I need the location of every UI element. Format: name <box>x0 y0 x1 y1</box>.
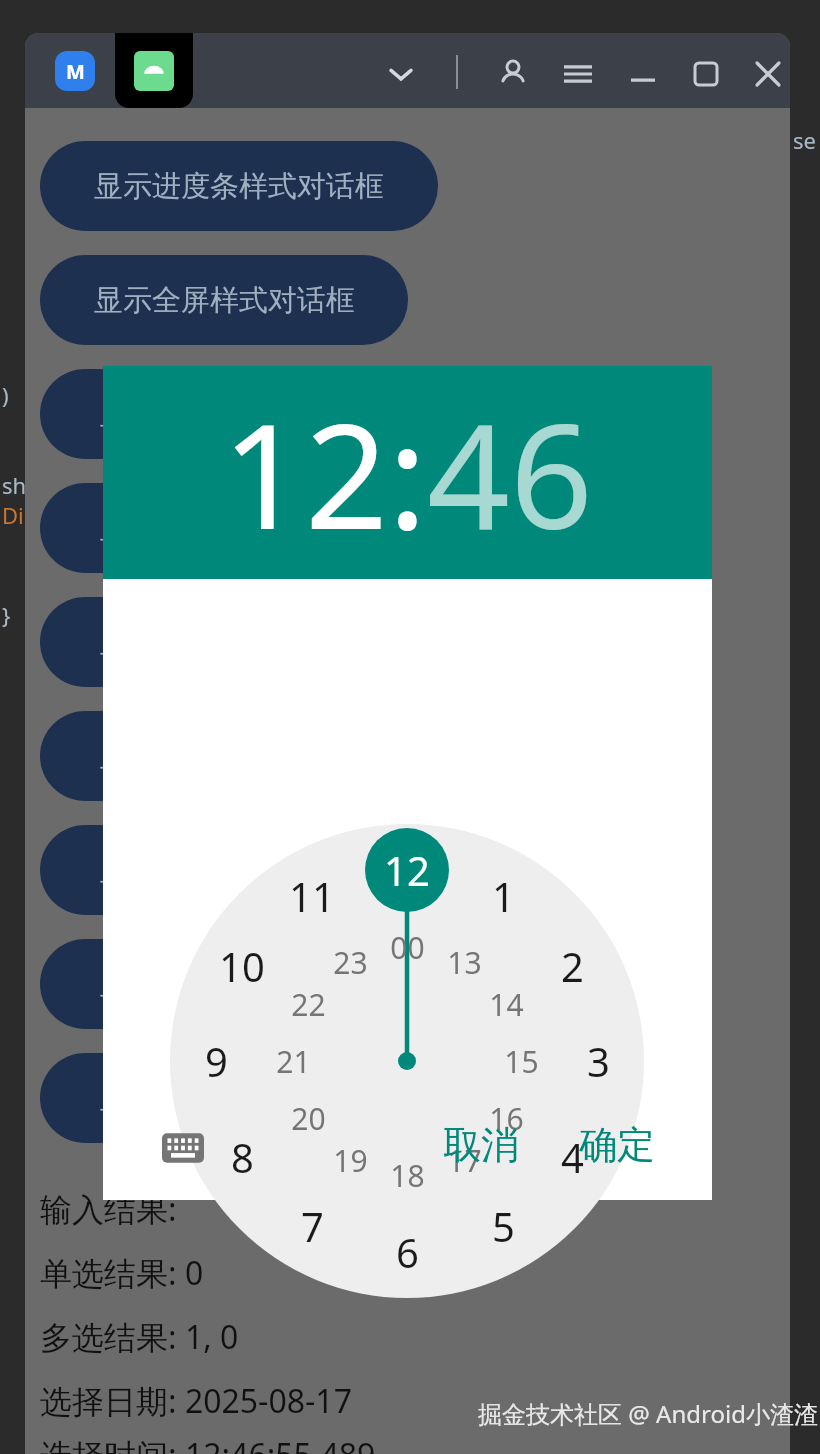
button[interactable]: 18 <box>371 1151 443 1199</box>
button[interactable]: 2 <box>532 938 612 994</box>
staticText: } <box>2 600 11 630</box>
staticText: 6 <box>396 1225 419 1279</box>
button[interactable]: 23 <box>314 938 386 986</box>
staticText: 显示日期选择对话框 <box>100 1080 361 1117</box>
staticText: 显示进度条样式对话框 <box>94 168 384 205</box>
staticText: 显示日期选择对话框 <box>100 852 361 889</box>
button[interactable]: 7 <box>272 1198 352 1254</box>
button[interactable]: 确定 <box>561 1110 673 1180</box>
staticText: 7 <box>301 1199 324 1253</box>
button[interactable]: 显示日期选择对话框 <box>40 939 420 1029</box>
button[interactable]: 显示日期选择对话框 <box>40 1053 420 1143</box>
staticText: 选择日期: 2025-08-17 <box>40 1379 352 1423</box>
staticText: 5 <box>492 1199 515 1253</box>
button[interactable]: 6 <box>367 1224 447 1280</box>
staticText: 19 <box>333 1140 368 1181</box>
staticText: Di <box>2 500 24 530</box>
button[interactable]: Switch to keyboard input <box>155 1120 211 1176</box>
button[interactable]: 显示全屏样式对话框 <box>40 255 408 345</box>
button[interactable]: Maximize <box>683 51 729 97</box>
staticText: 12 <box>384 843 430 897</box>
button[interactable]: Emulator tab <box>115 33 193 108</box>
button[interactable]: 显示日期选择对话框 <box>40 369 420 459</box>
staticText: 8 <box>231 1130 254 1184</box>
staticText: 单选结果: 0 <box>40 1251 204 1295</box>
staticText: ) <box>2 380 9 410</box>
staticText: 9 <box>205 1034 228 1088</box>
staticText: 4 <box>561 1130 584 1184</box>
button[interactable]: 显示日期选择对话框 <box>40 825 420 915</box>
button[interactable]: 9 <box>176 1033 256 1089</box>
button[interactable]: 取消 <box>425 1110 537 1180</box>
button[interactable]: 21 <box>257 1037 329 1085</box>
staticText: 显示全屏样式对话框 <box>94 282 355 319</box>
staticText: se <box>793 125 816 155</box>
staticText: 00 <box>390 927 425 968</box>
staticText: 17 <box>447 1140 482 1181</box>
staticText: 3 <box>587 1034 610 1088</box>
staticText: 2 <box>561 939 584 993</box>
staticText: M <box>66 58 85 85</box>
staticText: 20 <box>291 1098 326 1139</box>
button[interactable]: 16 <box>470 1094 542 1142</box>
staticText: 22 <box>291 984 326 1025</box>
button[interactable]: 13 <box>428 938 500 986</box>
button[interactable]: 20 <box>272 1094 344 1142</box>
button[interactable]: 8 <box>202 1129 282 1185</box>
button[interactable]: Account <box>490 51 536 97</box>
staticText: : <box>388 374 427 571</box>
staticText: 16 <box>489 1098 524 1139</box>
button[interactable]: 14 <box>470 980 542 1028</box>
staticText: 15 <box>504 1041 539 1082</box>
button[interactable]: 17 <box>428 1136 500 1184</box>
staticText: 18 <box>390 1155 425 1196</box>
staticText: 23 <box>333 942 368 983</box>
staticText: 多选结果: 1, 0 <box>40 1315 239 1359</box>
button[interactable]: 1 <box>463 868 543 924</box>
staticText: 掘金技术社区 @ Android小渣渣 <box>478 1397 818 1430</box>
button[interactable]: 46 <box>427 374 593 571</box>
staticText: 显示日期选择对话框 <box>100 738 361 775</box>
button[interactable]: 4 <box>532 1129 612 1185</box>
staticText: 显示日期选择对话框 <box>100 396 361 433</box>
staticText: 1 <box>492 869 515 923</box>
staticText: 14 <box>489 984 524 1025</box>
staticText: 显示日期选择对话框 <box>100 510 361 547</box>
button[interactable]: 显示日期选择对话框 <box>40 483 420 573</box>
staticText: 选择时间: 12:46:55.489 <box>40 1433 376 1454</box>
button[interactable]: 22 <box>272 980 344 1028</box>
button[interactable]: Menu <box>555 51 601 97</box>
staticText: sh <box>2 470 27 500</box>
button[interactable]: 显示日期选择对话框 <box>40 597 420 687</box>
button[interactable]: 19 <box>314 1136 386 1184</box>
staticText: 输入结果: <box>40 1187 185 1231</box>
button[interactable]: Running devices <box>55 51 95 91</box>
button[interactable]: 5 <box>463 1198 543 1254</box>
staticText: 显示日期选择对话框 <box>100 966 361 1003</box>
button[interactable]: 15 <box>485 1037 557 1085</box>
button[interactable]: Expand <box>380 53 422 95</box>
staticText: 21 <box>276 1041 311 1082</box>
staticText: 确定 <box>579 1121 655 1169</box>
button[interactable]: Minimize <box>620 51 666 97</box>
staticText: 11 <box>289 869 335 923</box>
staticText: 显示日期选择对话框 <box>100 624 361 661</box>
button[interactable]: 10 <box>202 938 282 994</box>
button[interactable]: 12 <box>222 374 388 571</box>
button[interactable]: 11 <box>272 868 352 924</box>
staticText: 10 <box>219 939 265 993</box>
button[interactable]: 3 <box>558 1033 638 1089</box>
button[interactable]: 显示进度条样式对话框 <box>40 141 438 231</box>
button[interactable]: 12 <box>367 842 447 898</box>
staticText: 取消 <box>443 1121 519 1169</box>
staticText: 13 <box>447 942 482 983</box>
button[interactable]: 显示日期选择对话框 <box>40 711 420 801</box>
button[interactable]: 00 <box>371 923 443 971</box>
button[interactable]: Close <box>745 51 790 97</box>
